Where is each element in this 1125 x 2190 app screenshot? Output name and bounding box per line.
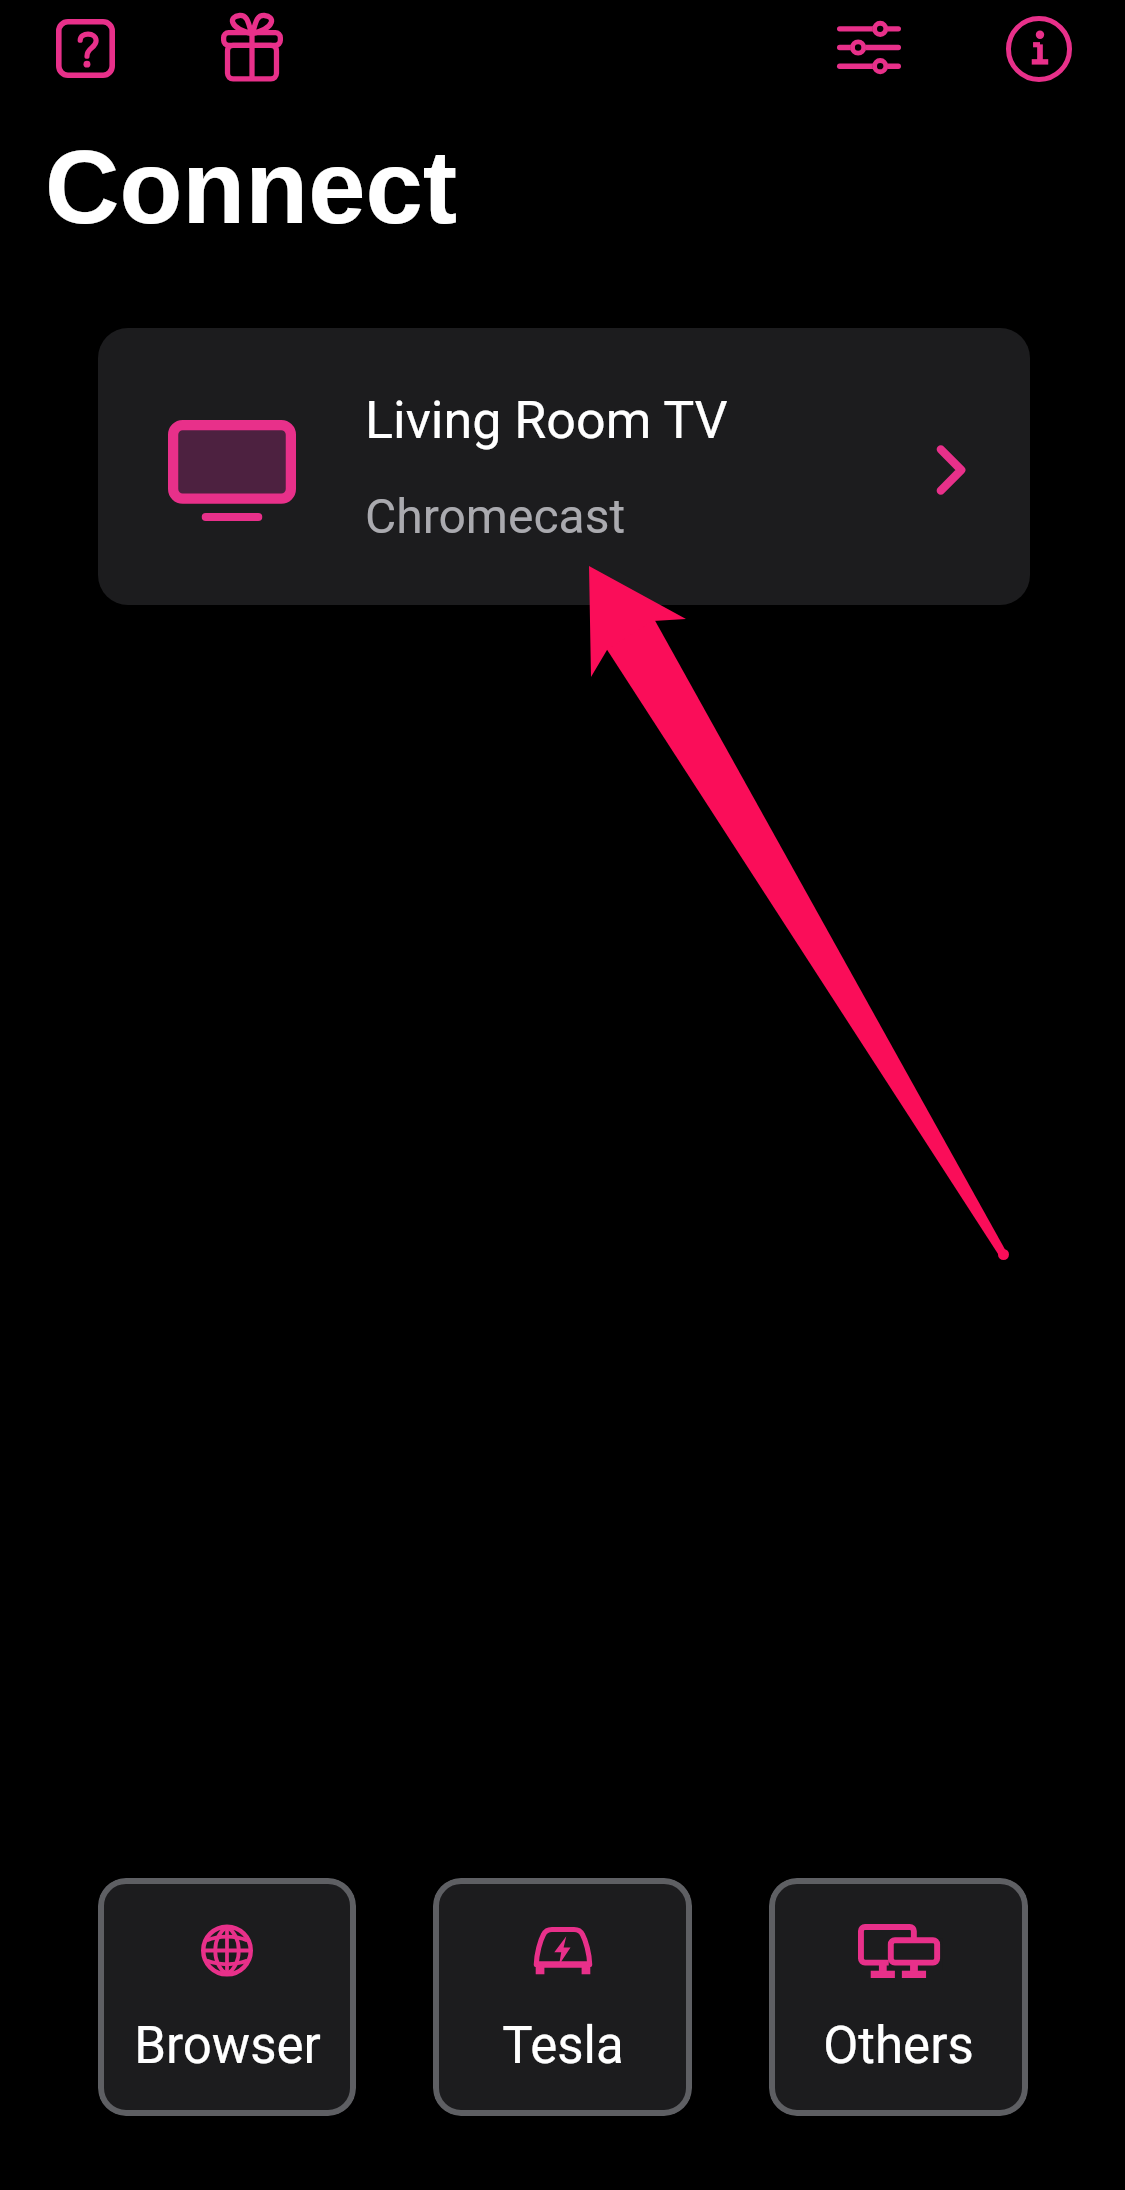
- button[interactable]: Info: [994, 4, 1084, 94]
- staticText: Others: [823, 2016, 974, 2076]
- button[interactable]: Others: [769, 1878, 1028, 2116]
- button[interactable]: Living Room TV: [98, 328, 1030, 605]
- button[interactable]: Help: [41, 4, 129, 92]
- staticText: Browser: [134, 2016, 321, 2076]
- button[interactable]: Tesla: [433, 1878, 692, 2116]
- button[interactable]: Gift: [207, 3, 296, 92]
- staticText: Tesla: [502, 2016, 624, 2076]
- staticText: Living Room TV: [365, 390, 728, 451]
- button[interactable]: Browser: [98, 1878, 356, 2116]
- staticText: Chromecast: [365, 488, 626, 544]
- button[interactable]: Settings: [824, 3, 913, 92]
- staticText: Connect: [45, 130, 457, 245]
